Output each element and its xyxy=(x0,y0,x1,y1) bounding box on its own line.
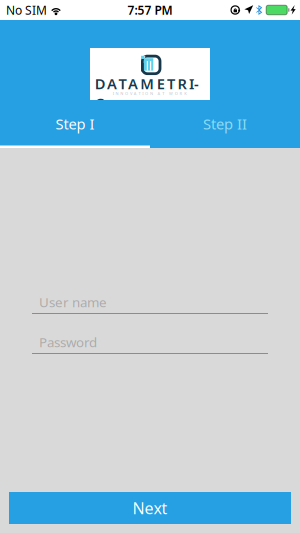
button[interactable]: Password xyxy=(32,331,268,354)
staticText: DATAMETRIC xyxy=(95,74,205,93)
button[interactable]: Step II xyxy=(150,112,300,148)
staticText: Next xyxy=(132,497,167,519)
staticText: Password xyxy=(39,333,97,351)
staticText: 7:57 PM xyxy=(127,2,172,18)
button[interactable]: Step I xyxy=(0,112,150,148)
staticText: Step I xyxy=(55,114,94,133)
button[interactable]: User name xyxy=(32,291,268,314)
button[interactable]: Next xyxy=(9,492,291,524)
staticText: Step II xyxy=(203,114,247,133)
staticText: User name xyxy=(39,293,107,311)
staticText: I N N O V A T I O N A T W O R K xyxy=(113,91,187,96)
staticText: No SIM xyxy=(6,2,47,18)
